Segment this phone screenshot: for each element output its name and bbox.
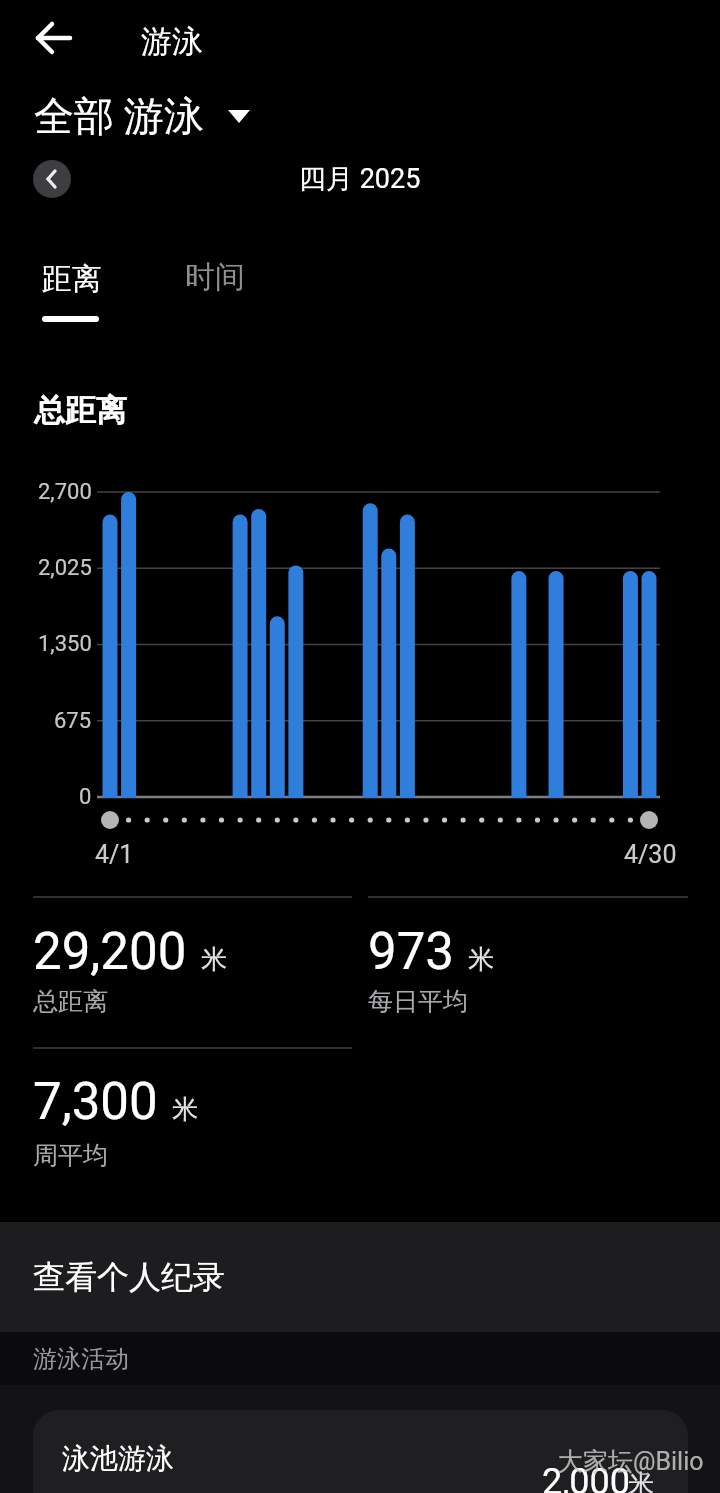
staticText: 2,025 [38,555,92,581]
staticText: 查看个人纪录 [33,1257,225,1297]
staticText: 2,700 [38,479,92,505]
staticText: 大家坛@Bilio [558,1446,704,1477]
staticText: 总距离 [34,391,127,430]
staticText: 973 [368,922,454,982]
staticText: 四月 2025 [299,162,421,196]
staticText: 距离 [42,260,102,298]
staticText: 泳池游泳 [62,1441,174,1476]
staticText: 游泳 [141,22,203,61]
staticText: 周平均 [33,1140,108,1171]
staticText: 全部 游泳 [34,91,204,141]
staticText: 米 [172,1093,198,1126]
button[interactable]: 泳池游泳 [33,1410,688,1493]
staticText: 米 [468,943,494,976]
staticText: 675 [54,708,92,734]
staticText: 米 [628,1468,654,1493]
staticText: 游泳活动 [33,1344,129,1374]
staticText: 每日平均 [368,986,468,1017]
staticText: 时间 [185,258,245,296]
staticText: 1,350 [38,631,92,657]
button[interactable] [33,160,71,198]
staticText: 4/30 [624,840,677,869]
staticText: 7,300 [33,1072,158,1132]
staticText: 2,000 [542,1461,631,1493]
button[interactable] [24,18,80,58]
button[interactable]: 时间 [163,245,288,330]
staticText: 总距离 [33,986,108,1017]
button[interactable]: 全部 游泳 [34,91,250,141]
staticText: 29,200 [33,922,187,982]
staticText: 0 [79,784,92,810]
staticText: 4/1 [95,840,134,869]
button[interactable]: 距离 [20,245,145,330]
button[interactable]: 查看个人纪录 [0,1222,720,1332]
staticText: 米 [201,943,227,976]
